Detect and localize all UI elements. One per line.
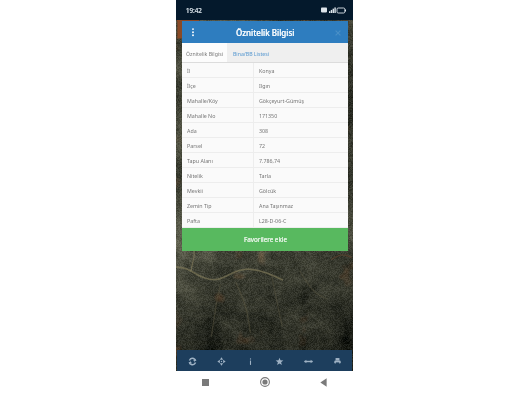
button[interactable]: Close (327, 22, 348, 43)
staticText: Tarla (259, 172, 272, 179)
staticText: Gökçeyurt-Gümüş (259, 97, 304, 104)
staticText: 19:42 (186, 6, 202, 14)
button[interactable]: Info (236, 350, 265, 372)
staticText: Parsel (187, 142, 203, 149)
button[interactable]: Refresh (177, 350, 207, 372)
staticText: Mahalle/Köy (187, 97, 218, 104)
button[interactable]: Bina/BB Listesi (227, 43, 276, 63)
staticText: 72 (259, 142, 266, 149)
staticText: Öznitelik Bilgisi (186, 50, 224, 57)
staticText: Pafta (187, 217, 200, 224)
staticText: Gölcük (259, 187, 277, 194)
button[interactable]: Home (235, 371, 294, 393)
staticText: 308 (259, 127, 269, 134)
staticText: Mahalle No (187, 112, 216, 119)
staticText: Ilgın (259, 82, 271, 89)
button[interactable]: Print (323, 350, 352, 372)
staticText: İlçe (187, 82, 196, 89)
button[interactable]: Back (294, 371, 353, 393)
button[interactable]: Favorilere ekle (182, 228, 348, 251)
button[interactable]: Favorites (265, 350, 294, 372)
staticText: Tapu Alanı (187, 157, 213, 164)
staticText: 7.786,74 (259, 157, 281, 164)
staticText: L28-D-06-C (259, 217, 287, 224)
button[interactable]: More options (182, 22, 203, 43)
button[interactable]: Recents (176, 371, 235, 393)
staticText: Mevkii (187, 187, 203, 194)
staticText: Ada (187, 127, 197, 134)
staticText: Favorilere ekle (244, 235, 287, 244)
staticText: Bina/BB Listesi (233, 50, 270, 57)
button[interactable]: Locate (207, 350, 236, 372)
staticText: Konya (259, 67, 275, 74)
staticText: Zemin Tip (187, 202, 212, 209)
button[interactable]: Measure (294, 350, 323, 372)
staticText: İl (187, 67, 191, 74)
button[interactable]: Öznitelik Bilgisi (182, 43, 227, 63)
staticText: Nitelik (187, 172, 203, 179)
staticText: 171350 (259, 112, 278, 119)
staticText: Öznitelik Bilgisi (236, 27, 295, 38)
staticText: Ana Taşınmaz (259, 202, 294, 209)
